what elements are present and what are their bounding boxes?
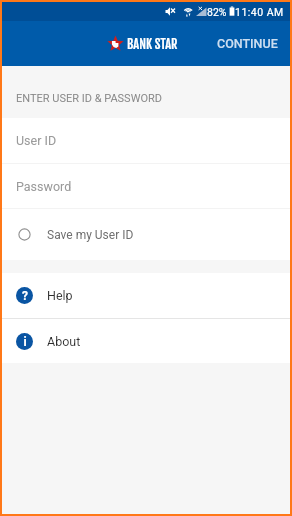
staticText: 11:40 AM xyxy=(235,6,284,18)
staticText: ? xyxy=(22,289,28,303)
staticText: BANK STAR xyxy=(127,36,178,52)
button[interactable]: User ID xyxy=(2,118,290,163)
button[interactable]: CONTINUE xyxy=(205,23,290,64)
staticText: User ID xyxy=(16,133,57,148)
button[interactable]: Help xyxy=(2,273,290,318)
staticText: About xyxy=(47,334,81,349)
button[interactable]: Password xyxy=(2,164,290,208)
other: About xyxy=(16,333,33,350)
staticText: 82% xyxy=(207,6,227,18)
staticText: ENTER USER ID & PASSWORD xyxy=(16,92,162,105)
staticText: i xyxy=(23,335,27,349)
staticText: CONTINUE xyxy=(217,36,278,51)
staticText: Save my User ID xyxy=(47,228,134,242)
button[interactable]: About xyxy=(2,319,290,363)
staticText: Help xyxy=(47,288,73,303)
other: Help xyxy=(16,287,33,304)
staticText: Password xyxy=(16,179,72,194)
button[interactable]: Save my User ID xyxy=(2,209,290,260)
